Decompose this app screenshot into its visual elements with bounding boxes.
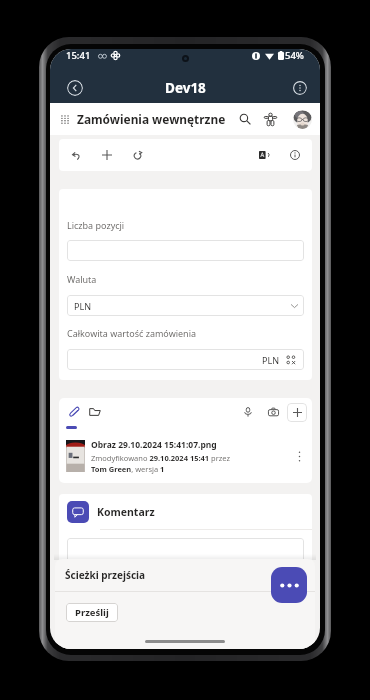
staticText: PLN [262,354,280,366]
button[interactable]: Profile [293,110,312,129]
button[interactable]: Refresh [128,146,146,164]
staticText: 15:41 [66,49,91,62]
staticText: Tom Green, wersja 1 [91,464,165,474]
staticText: Ścieżki przejścia [65,568,146,582]
button[interactable] [67,240,304,261]
button[interactable]: App menu [57,111,73,127]
button[interactable]: More options [292,80,307,95]
staticText: PLN [74,300,92,312]
button[interactable]: Take photo [264,403,282,421]
staticText: Całkowita wartość zamówienia [67,327,197,339]
staticText: Komentarz [97,505,155,519]
button[interactable]: PLN [67,349,304,370]
button[interactable]: Attachments [64,402,84,422]
staticText: Waluta [67,273,97,285]
button[interactable]: Obraz 29.10.2024 15:41:07.png [59,429,312,483]
button[interactable]: More actions [271,567,307,603]
button[interactable]: PLN [67,295,304,316]
button[interactable]: Search [236,110,254,128]
button[interactable]: Add attachment [287,403,307,422]
button[interactable]: Accessibility checker [261,110,279,128]
staticText: Zmodyfikowano 29.10.2024 15:41 przez [91,453,231,463]
button[interactable]: Prześlij [66,603,118,622]
button[interactable]: Information [286,146,304,164]
staticText: Zamówienia wewnętrzne [77,111,226,127]
button[interactable]: Comment [67,501,89,523]
button[interactable]: Files [85,402,105,422]
staticText: Liczba pozycji [67,219,125,231]
button[interactable]: Item actions [291,448,307,464]
button[interactable]: Read aloud [255,146,273,164]
staticText: Obraz 29.10.2024 15:41:07.png [91,439,217,451]
button[interactable]: Back [67,80,83,96]
staticText: 54% [285,49,304,62]
button[interactable] [67,538,304,562]
button[interactable]: Undo [67,146,85,164]
button[interactable]: Add [98,146,116,164]
button[interactable]: Record audio [239,403,257,421]
staticText: Dev18 [165,79,206,97]
staticText: Prześlij [75,606,109,619]
button[interactable]: Calculate [285,354,297,366]
